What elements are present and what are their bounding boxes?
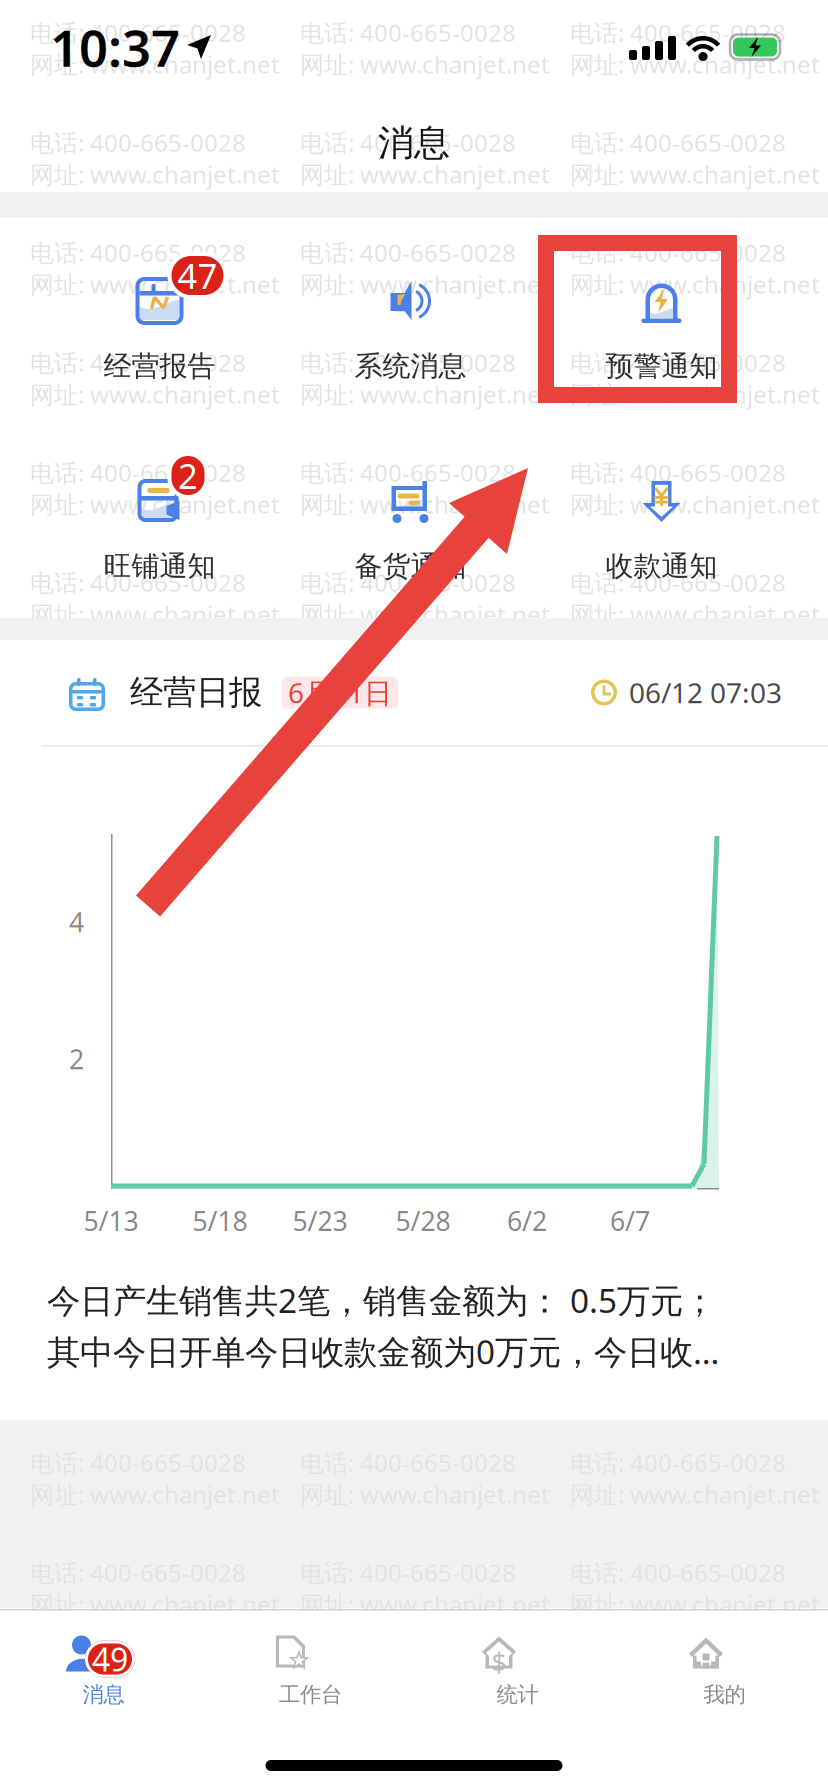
staticText: 电话: 400-665-0028: [30, 1226, 246, 1258]
staticText: 统计: [496, 1681, 538, 1708]
staticText: 网址: www.chanjet.net: [300, 158, 550, 190]
staticText: 电话: 400-665-0028: [570, 346, 786, 378]
staticText: 网址: www.chanjet.net: [570, 1258, 820, 1290]
staticText: 网址: www.chanjet.net: [30, 1698, 280, 1730]
staticText: 网址: www.chanjet.net: [300, 488, 550, 520]
staticText: 预警通知: [605, 349, 717, 383]
staticText: 电话: 400-665-0028: [570, 896, 786, 928]
staticText: 电话: 400-665-0028: [300, 236, 516, 268]
staticText: 网址: www.chanjet.net: [30, 378, 280, 410]
staticText: 消息: [378, 121, 450, 165]
staticText: 电话: 400-665-0028: [570, 1446, 786, 1478]
staticText: 网址: www.chanjet.net: [300, 598, 550, 630]
button[interactable]: 49: [0, 1610, 207, 1727]
staticText: 消息: [82, 1681, 124, 1708]
staticText: 我的: [703, 1681, 745, 1708]
staticText: 2: [69, 1041, 84, 1077]
staticText: 电话: 400-665-0028: [300, 126, 516, 158]
staticText: 电话: 400-665-0028: [570, 1006, 786, 1038]
staticText: 网址: www.chanjet.net: [30, 1258, 280, 1290]
staticText: 收款通知: [605, 549, 717, 583]
staticText: $: [491, 1644, 506, 1680]
staticText: 经营日报: [130, 672, 262, 713]
staticText: 网址: www.chanjet.net: [30, 1478, 280, 1510]
staticText: 电话: 400-665-0028: [300, 456, 516, 488]
staticText: 电话: 400-665-0028: [570, 236, 786, 268]
staticText: 网址: www.chanjet.net: [30, 818, 280, 850]
staticText: 电话: 400-665-0028: [570, 1336, 786, 1368]
staticText: 网址: www.chanjet.net: [30, 488, 280, 520]
staticText: 网址: www.chanjet.net: [570, 158, 820, 190]
staticText: 网址: www.chanjet.net: [570, 1588, 820, 1620]
staticText: 5/13: [83, 1203, 138, 1238]
staticText: 网址: www.chanjet.net: [570, 1698, 820, 1730]
staticText: 旺铺通知: [103, 549, 215, 583]
staticText: 备货通知: [354, 549, 466, 583]
staticText: 网址: www.chanjet.net: [300, 1258, 550, 1290]
button[interactable]: 备货通知: [285, 418, 536, 618]
staticText: 网址: www.chanjet.net: [30, 48, 280, 80]
staticText: 网址: www.chanjet.net: [570, 928, 820, 960]
staticText: 网址: www.chanjet.net: [300, 1478, 550, 1510]
staticText: 电话: 400-665-0028: [300, 676, 516, 708]
staticText: 电话: 400-665-0028: [30, 346, 246, 378]
staticText: 电话: 400-665-0028: [300, 1666, 516, 1698]
staticText: 电话: 400-665-0028: [570, 1556, 786, 1588]
staticText: 电话: 400-665-0028: [570, 1116, 786, 1148]
staticText: 06/12 07:03: [629, 674, 782, 711]
staticText: 电话: 400-665-0028: [30, 676, 246, 708]
staticText: 电话: 400-665-0028: [300, 1226, 516, 1258]
button[interactable]: 系统消息: [285, 218, 536, 418]
staticText: 电话: 400-665-0028: [30, 896, 246, 928]
staticText: 5/28: [395, 1203, 450, 1238]
button[interactable]: 我的: [621, 1610, 828, 1727]
button[interactable]: 工作台: [207, 1610, 414, 1727]
staticText: 电话: 400-665-0028: [30, 1336, 246, 1368]
button[interactable]: 预警通知: [536, 218, 787, 418]
staticText: 网址: www.chanjet.net: [570, 1148, 820, 1180]
staticText: 网址: www.chanjet.net: [570, 378, 820, 410]
staticText: 2: [178, 452, 198, 498]
staticText: 电话: 400-665-0028: [570, 16, 786, 48]
staticText: 5/23: [292, 1203, 347, 1238]
staticText: 系统消息: [354, 349, 466, 383]
staticText: 网址: www.chanjet.net: [300, 1698, 550, 1730]
staticText: 电话: 400-665-0028: [300, 566, 516, 598]
staticText: 经营报告: [103, 349, 215, 383]
staticText: 网址: www.chanjet.net: [30, 928, 280, 960]
staticText: 6月11日: [288, 674, 392, 711]
staticText: 5/18: [192, 1203, 247, 1238]
button[interactable]: $: [414, 1610, 621, 1727]
staticText: 电话: 400-665-0028: [300, 16, 516, 48]
staticText: 6/2: [507, 1203, 547, 1238]
staticText: 电话: 400-665-0028: [30, 236, 246, 268]
staticText: 网址: www.chanjet.net: [30, 598, 280, 630]
staticText: 电话: 400-665-0028: [570, 1226, 786, 1258]
staticText: 网址: www.chanjet.net: [300, 48, 550, 80]
staticText: 网址: www.chanjet.net: [30, 268, 280, 300]
staticText: 电话: 400-665-0028: [570, 126, 786, 158]
staticText: 网址: www.chanjet.net: [300, 708, 550, 740]
staticText: 电话: 400-665-0028: [570, 1666, 786, 1698]
staticText: 网址: www.chanjet.net: [570, 1038, 820, 1070]
button[interactable]: 2: [34, 418, 285, 618]
staticText: 网址: www.chanjet.net: [300, 1588, 550, 1620]
staticText: 电话: 400-665-0028: [570, 676, 786, 708]
staticText: 电话: 400-665-0028: [30, 566, 246, 598]
button[interactable]: 收款通知: [536, 418, 787, 618]
staticText: 网址: www.chanjet.net: [570, 1478, 820, 1510]
staticText: 网址: www.chanjet.net: [300, 268, 550, 300]
staticText: 今日产生销售共2笔，销售金额为： 0.5万元；: [47, 1278, 716, 1322]
staticText: 电话: 400-665-0028: [30, 1556, 246, 1588]
staticText: 6/7: [610, 1203, 650, 1238]
button[interactable]: 47: [34, 218, 285, 418]
